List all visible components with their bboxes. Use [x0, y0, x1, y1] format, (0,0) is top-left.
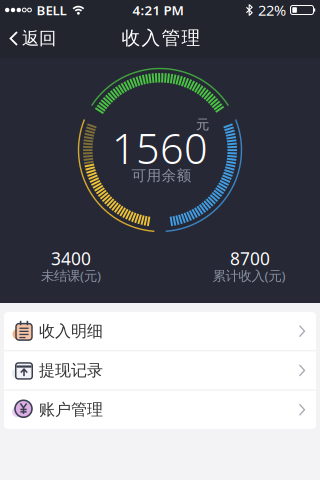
staticText: 累计收入(元) [212, 267, 285, 284]
staticText: BELL [36, 1, 66, 19]
staticText: 1560 [112, 121, 208, 175]
staticText: 提现记录 [39, 361, 103, 380]
button[interactable]: 返回 [1, 19, 56, 57]
staticText: 8700 [230, 247, 270, 270]
staticText: 可用余额 [131, 166, 191, 184]
button[interactable]: 收入明细 [4, 312, 316, 350]
staticText: 4:21 PM [132, 1, 183, 19]
staticText: 3400 [51, 247, 91, 270]
staticText: 22% [258, 0, 286, 20]
button[interactable]: 账户管理 [4, 391, 316, 429]
staticText: 未结课(元) [41, 267, 101, 284]
staticText: 收入管理 [121, 26, 200, 49]
staticText: 元 [196, 116, 209, 133]
staticText: 账户管理 [39, 400, 103, 420]
button[interactable]: 提现记录 [4, 351, 316, 390]
staticText: 收入明细 [39, 321, 103, 341]
staticText: 返回 [22, 28, 56, 49]
